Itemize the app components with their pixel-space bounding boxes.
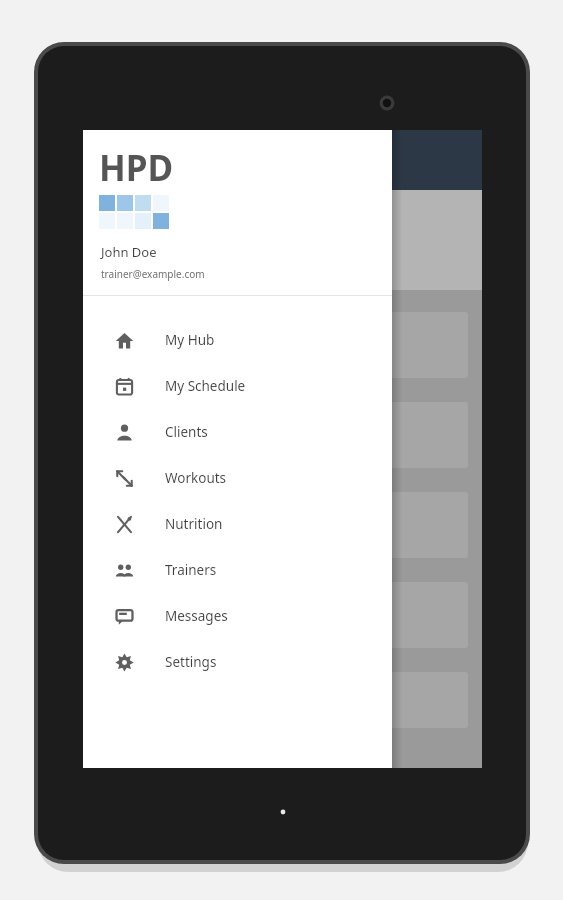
- staticText: My Hub: [165, 331, 215, 349]
- button[interactable]: Workouts: [83, 455, 392, 501]
- staticText: Nutrition: [165, 515, 223, 533]
- staticText: Clients: [165, 423, 208, 441]
- button[interactable]: My Schedule: [83, 363, 392, 409]
- staticText: Trainers: [165, 561, 217, 579]
- staticText: Settings: [165, 653, 217, 671]
- staticText: My Schedule: [165, 377, 246, 395]
- staticText: trainer@example.com: [101, 267, 205, 281]
- button[interactable]: Messages: [83, 593, 392, 639]
- button[interactable]: Settings: [83, 639, 392, 685]
- staticText: Messages: [165, 607, 228, 625]
- button[interactable]: My Hub: [83, 317, 392, 363]
- button[interactable]: Nutrition: [83, 501, 392, 547]
- staticText: HPD: [99, 144, 174, 192]
- button[interactable]: Trainers: [83, 547, 392, 593]
- button[interactable]: Clients: [83, 409, 392, 455]
- staticText: Workouts: [165, 469, 227, 487]
- staticText: John Doe: [101, 243, 157, 261]
